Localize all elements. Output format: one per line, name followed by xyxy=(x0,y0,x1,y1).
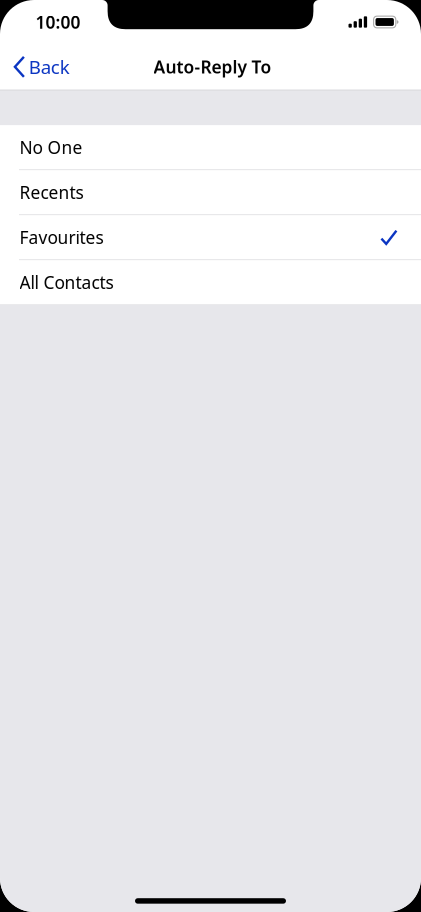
button[interactable]: All Contacts xyxy=(0,260,421,304)
staticText: Auto-Reply To xyxy=(153,55,271,78)
button[interactable]: No One xyxy=(0,125,421,170)
staticText: Back xyxy=(29,54,70,79)
button[interactable]: Favourites xyxy=(0,215,421,260)
staticText: No One xyxy=(20,136,83,159)
staticText: Favourites xyxy=(20,226,104,249)
button[interactable]: Back xyxy=(0,45,80,89)
staticText: All Contacts xyxy=(20,271,114,294)
button[interactable]: Recents xyxy=(0,170,421,215)
staticText: 10:00 xyxy=(35,10,80,33)
staticText: Recents xyxy=(20,181,84,204)
